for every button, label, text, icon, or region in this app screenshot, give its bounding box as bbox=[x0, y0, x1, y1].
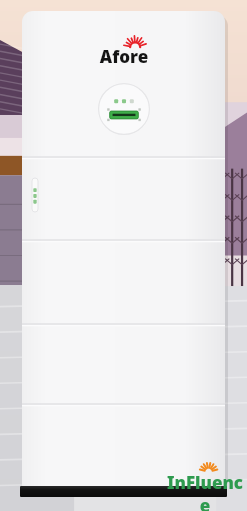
staticText: InFluence bbox=[165, 471, 245, 511]
staticText: Afore bbox=[88, 45, 160, 68]
button[interactable]: Afore bbox=[88, 37, 160, 63]
button[interactable]: Inverter status display bbox=[98, 83, 150, 135]
button[interactable]: Battery level indicator bbox=[32, 178, 38, 212]
button[interactable]: Afore bbox=[22, 11, 225, 487]
